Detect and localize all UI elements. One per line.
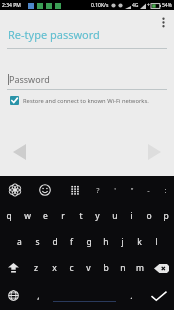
staticText: 54% [162,2,172,9]
staticText: m [136,262,144,274]
staticText: q [6,210,12,222]
button[interactable]: ' [106,176,123,203]
button[interactable]: y [89,203,106,229]
button[interactable]: w [18,203,36,229]
button[interactable]: d [46,229,63,255]
staticText: l [155,236,158,248]
staticText: r [61,210,65,222]
button[interactable]: Previous [2,135,36,169]
button[interactable]: Restore and connect to known Wi-Fi netwo… [0,96,174,105]
staticText: 2:34 PM [2,2,21,9]
button[interactable]: a [10,229,28,255]
staticText: " [130,185,134,195]
button[interactable]: c [63,255,80,281]
staticText: d [52,236,58,248]
staticText: , [37,290,40,302]
button[interactable]: s [28,229,46,255]
staticText: k [137,236,142,248]
button[interactable]: h [97,229,114,255]
staticText: u [112,210,118,222]
button[interactable]: i [123,203,140,229]
staticText: i [130,210,133,222]
button[interactable]: - [140,176,157,203]
staticText: 4G [132,2,139,9]
button[interactable]: n [114,255,131,281]
button[interactable]: x [45,255,63,281]
staticText: 0.10K/s [91,2,109,9]
button[interactable]: . [119,281,144,310]
button[interactable]: , [26,281,50,310]
staticText: e [43,210,48,222]
button[interactable]: r [54,203,72,229]
staticText: t [79,210,83,222]
button[interactable]: flower [0,176,30,203]
staticText: c [69,262,74,274]
staticText: b [103,262,109,274]
staticText: ' [114,185,116,195]
button[interactable]: Shift [0,255,27,281]
staticText: : [164,185,167,195]
staticText: n [120,262,126,274]
button[interactable]: Next [137,135,171,169]
staticText: ? [96,185,100,195]
button[interactable]: p [157,203,174,229]
button[interactable]: l [148,229,165,255]
staticText: . [130,290,133,302]
staticText: a [17,236,22,248]
button[interactable]: g [80,229,97,255]
button[interactable]: More options [154,13,172,31]
staticText: Password [9,73,50,85]
button[interactable]: Space [50,281,119,310]
button[interactable]: q [0,203,18,229]
button[interactable]: e [36,203,54,229]
button[interactable]: t [72,203,89,229]
button[interactable]: b [97,255,114,281]
staticText: w [24,210,31,222]
button[interactable]: o [140,203,157,229]
staticText: p [163,210,169,222]
staticText: Re-type password [8,27,100,42]
button[interactable]: grid [60,176,89,203]
staticText: z [34,262,38,274]
button[interactable]: " [123,176,140,203]
button[interactable]: k [131,229,148,255]
button[interactable]: Change language [0,281,26,310]
staticText: h [103,236,109,248]
button[interactable]: v [80,255,97,281]
staticText: Restore and connect to known Wi-Fi netwo… [23,97,149,105]
staticText: j [121,236,124,248]
button[interactable]: u [106,203,123,229]
button[interactable]: smiley [30,176,60,203]
staticText: v [86,262,91,274]
button[interactable]: m [131,255,148,281]
button[interactable]: ? [89,176,106,203]
staticText: x [52,262,57,274]
button[interactable]: Enter [144,281,174,310]
staticText: o [146,210,152,222]
staticText: - [147,185,150,195]
staticText: f [70,236,73,248]
button[interactable]: f [63,229,80,255]
staticText: g [86,236,92,248]
button[interactable]: : [157,176,174,203]
button[interactable]: j [114,229,131,255]
staticText: y [95,210,100,222]
staticText: + [147,2,150,9]
button[interactable]: z [27,255,45,281]
staticText: s [35,236,40,248]
button[interactable]: Backspace [148,255,174,281]
